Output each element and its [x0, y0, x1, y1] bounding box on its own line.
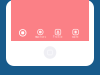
button[interactable]: Capture — [14, 29, 31, 38]
button[interactable]: Home — [44, 46, 56, 59]
staticText: More — [72, 35, 79, 39]
button[interactable]: More — [67, 29, 84, 39]
staticText: Profile — [53, 35, 63, 39]
staticText: Favorites — [35, 35, 46, 39]
button[interactable]: Favorites — [31, 29, 49, 39]
button[interactable]: Profile — [49, 29, 67, 39]
